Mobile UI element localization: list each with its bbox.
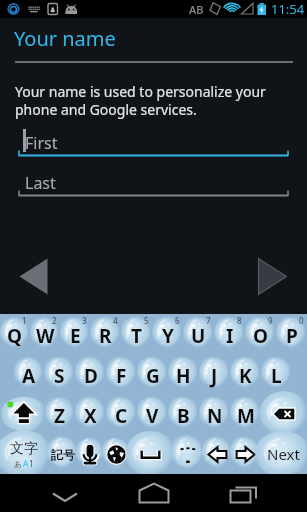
staticText: First <box>25 132 58 154</box>
staticText: Last <box>25 172 56 194</box>
button[interactable]: W <box>30 314 60 354</box>
button[interactable]: Recent apps <box>226 477 262 509</box>
button[interactable]: Previous <box>19 257 48 296</box>
button[interactable]: Voice input <box>77 434 103 474</box>
button[interactable]: Shift <box>0 394 45 434</box>
staticText: 文字 <box>10 440 38 458</box>
staticText: N <box>207 403 223 429</box>
button[interactable]: D <box>75 354 106 394</box>
staticText: O <box>253 323 269 349</box>
staticText: R <box>99 323 112 349</box>
staticText: A <box>23 458 29 469</box>
button[interactable]: First <box>18 123 289 159</box>
button[interactable]: C <box>106 394 137 434</box>
staticText: あ <box>14 459 23 469</box>
staticText: L <box>271 363 282 389</box>
button[interactable]: G <box>137 354 168 394</box>
staticText: Next <box>267 444 300 464</box>
staticText: Q <box>7 323 23 349</box>
staticText: 1 <box>29 458 34 469</box>
staticText: 2 <box>52 315 57 326</box>
staticText: 6 <box>175 315 180 326</box>
staticText: Z <box>54 403 66 429</box>
button[interactable]: M <box>230 394 261 434</box>
staticText: I <box>226 323 234 349</box>
staticText: 9 <box>268 315 273 326</box>
staticText: B <box>177 403 190 429</box>
button[interactable]: Z <box>45 394 75 434</box>
button[interactable]: I <box>214 314 245 354</box>
button[interactable]: F <box>106 354 137 394</box>
button[interactable]: Language <box>103 434 129 474</box>
button[interactable]: L <box>261 354 292 394</box>
button[interactable]: A <box>14 354 44 394</box>
staticText: Y <box>162 323 174 349</box>
staticText: D <box>84 363 98 389</box>
button[interactable]: E <box>60 314 90 354</box>
button[interactable]: N <box>199 394 230 434</box>
staticText: X <box>84 403 97 429</box>
button[interactable]: J <box>199 354 230 394</box>
button[interactable]: S <box>44 354 75 394</box>
staticText: H <box>176 363 191 389</box>
button[interactable]: X <box>75 394 106 434</box>
button[interactable]: Y <box>152 314 183 354</box>
button[interactable]: Next <box>259 434 307 474</box>
button[interactable] <box>172 434 203 474</box>
staticText: V <box>146 403 159 429</box>
button[interactable]: Backspace <box>261 394 307 434</box>
button[interactable]: Space <box>129 434 172 474</box>
button[interactable]: Move right <box>231 434 259 474</box>
staticText: M <box>237 403 255 429</box>
staticText: 11:54 <box>271 0 305 18</box>
staticText: C <box>115 403 128 429</box>
button[interactable]: Last <box>18 163 289 199</box>
button[interactable]: B <box>168 394 199 434</box>
staticText: U <box>191 323 206 349</box>
button[interactable]: Next <box>258 257 287 296</box>
staticText: Your name is used to personalize your ph… <box>15 82 266 119</box>
staticText: P <box>286 323 298 349</box>
button[interactable]: Home <box>136 477 172 509</box>
staticText: AB <box>189 2 204 17</box>
staticText: 5 <box>144 315 149 326</box>
staticText: 4 <box>113 315 118 326</box>
button[interactable]: 記号 <box>48 434 77 474</box>
staticText: 7 <box>206 315 211 326</box>
button[interactable]: P <box>276 314 307 354</box>
staticText: 3 <box>82 315 87 326</box>
staticText: G <box>146 363 160 389</box>
staticText: W <box>36 323 55 349</box>
staticText: 0 <box>299 315 304 326</box>
button[interactable]: K <box>230 354 261 394</box>
button[interactable]: H <box>168 354 199 394</box>
staticText: 記号 <box>51 447 75 462</box>
staticText: T <box>131 323 142 349</box>
button[interactable]: O <box>245 314 276 354</box>
staticText: Your name <box>14 25 116 52</box>
button[interactable]: T <box>121 314 152 354</box>
button[interactable]: Move left <box>203 434 231 474</box>
staticText: 8 <box>237 315 242 326</box>
staticText: A <box>22 363 36 389</box>
staticText: S <box>54 363 65 389</box>
staticText: F <box>116 363 127 389</box>
staticText: E <box>70 323 81 349</box>
button[interactable]: 文字 <box>0 434 48 474</box>
staticText: K <box>239 363 252 389</box>
staticText: 1 <box>22 315 27 326</box>
button[interactable]: R <box>90 314 121 354</box>
button[interactable]: U <box>183 314 214 354</box>
staticText: J <box>211 363 218 389</box>
button[interactable]: Q <box>0 314 30 354</box>
button[interactable]: V <box>137 394 168 434</box>
button[interactable]: Hide keyboard <box>47 477 83 509</box>
